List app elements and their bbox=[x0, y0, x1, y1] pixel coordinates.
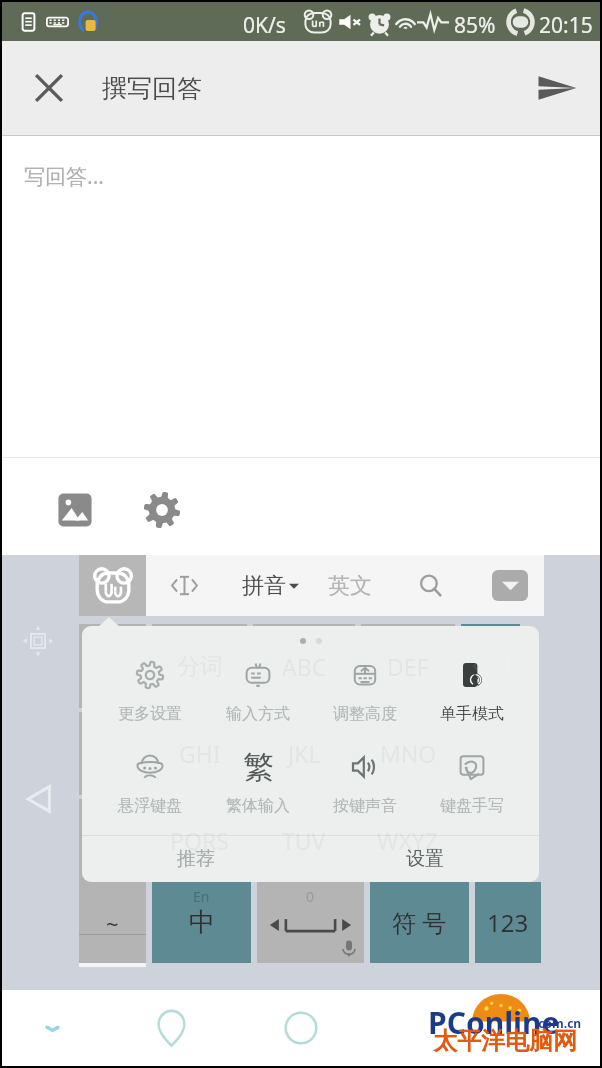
staticText: 悬浮键盘 bbox=[118, 796, 182, 816]
button[interactable]: Back bbox=[20, 990, 84, 1066]
staticText: 按键声音 bbox=[333, 796, 397, 816]
staticText: .com.cn bbox=[535, 1015, 582, 1031]
button[interactable]: 单手模式 bbox=[418, 651, 525, 731]
button[interactable]: Hide keyboard bbox=[492, 570, 528, 601]
button[interactable]: 键盘手写 bbox=[418, 743, 525, 823]
button[interactable]: Keyboard settings bbox=[143, 491, 181, 529]
button[interactable]: 更多设置 bbox=[96, 651, 204, 731]
staticText: 中 bbox=[189, 906, 215, 939]
button[interactable]: 设置 bbox=[310, 836, 539, 882]
button[interactable]: 0 bbox=[257, 882, 364, 963]
staticText: 推荐 bbox=[177, 847, 215, 871]
staticText: 拼音 bbox=[242, 572, 286, 600]
button[interactable]: 推荐 bbox=[82, 836, 310, 882]
staticText: PQRS bbox=[170, 825, 229, 856]
staticText: TUV bbox=[282, 825, 326, 856]
staticText: 太平洋电脑网 bbox=[433, 1026, 577, 1056]
staticText: DEF bbox=[387, 651, 429, 682]
staticText: WXYZ bbox=[377, 825, 439, 856]
staticText: PConline bbox=[428, 1002, 560, 1043]
button[interactable]: Send bbox=[536, 67, 578, 109]
staticText: En bbox=[193, 887, 210, 906]
button[interactable]: Close bbox=[26, 65, 72, 111]
button[interactable]: 悬浮键盘 bbox=[96, 743, 204, 823]
button[interactable]: En bbox=[152, 882, 251, 963]
staticText: 键盘手写 bbox=[440, 796, 504, 816]
button[interactable]: 撰写回答 bbox=[102, 73, 202, 104]
button[interactable]: 123 bbox=[475, 882, 541, 963]
staticText: 单手模式 bbox=[440, 704, 504, 724]
button[interactable]: ~ bbox=[79, 882, 146, 963]
button[interactable]: 输入方式 bbox=[204, 651, 311, 731]
staticText: 符 号 bbox=[392, 906, 447, 939]
staticText: 分词 bbox=[177, 652, 223, 681]
staticText: 繁体输入 bbox=[226, 796, 290, 816]
staticText: JKL bbox=[288, 738, 321, 769]
staticText: 20:15 bbox=[539, 11, 593, 40]
button[interactable]: 按键声音 bbox=[311, 743, 418, 823]
button[interactable]: 调整高度 bbox=[311, 651, 418, 731]
button[interactable]: Move cursor bbox=[169, 570, 200, 601]
button[interactable]: Insert image bbox=[57, 492, 93, 528]
staticText: 调整高度 bbox=[333, 704, 397, 724]
button[interactable]: Recent apps bbox=[269, 990, 333, 1066]
button[interactable]: 符 号 bbox=[370, 882, 469, 963]
staticText: 0K/s bbox=[243, 11, 286, 40]
staticText: 输入方式 bbox=[226, 704, 290, 724]
staticText: MNO bbox=[380, 738, 437, 769]
staticText: ~ bbox=[106, 908, 119, 938]
staticText: 更多设置 bbox=[118, 704, 182, 724]
staticText: 0 bbox=[306, 887, 315, 906]
staticText: 设置 bbox=[406, 847, 444, 871]
button[interactable]: Baidu input bbox=[79, 555, 146, 616]
button[interactable]: 繁 bbox=[204, 743, 311, 823]
staticText: GHI bbox=[179, 738, 221, 769]
button[interactable]: Search bbox=[418, 573, 444, 599]
staticText: 85% bbox=[454, 11, 496, 40]
staticText: 写回答... bbox=[24, 162, 104, 191]
staticText: 123 bbox=[487, 906, 529, 939]
button[interactable]: 拼音 bbox=[242, 572, 299, 600]
staticText: ABC bbox=[282, 651, 327, 682]
button[interactable]: Home bbox=[139, 990, 203, 1066]
button[interactable]: 英文 bbox=[328, 572, 372, 600]
staticText: 繁 bbox=[243, 748, 274, 786]
